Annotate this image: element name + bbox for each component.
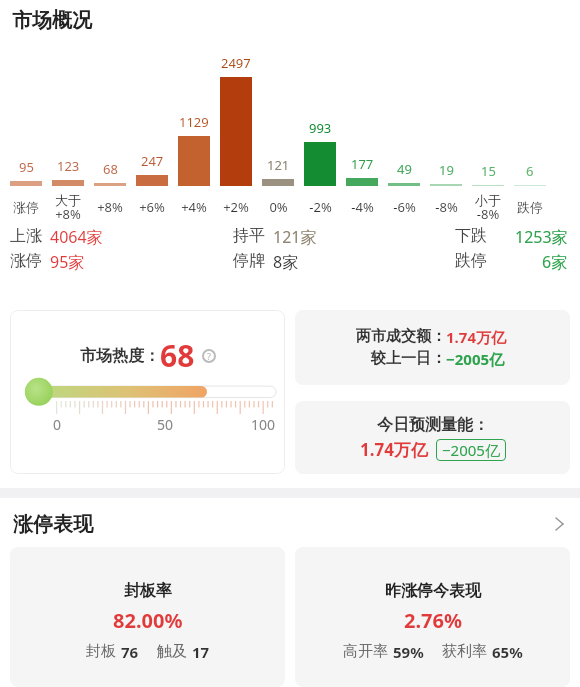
staticText: 涨停 [13,199,39,215]
staticText: 17 [192,642,210,662]
staticText: +2% [223,198,249,216]
staticText: 95 [19,158,34,176]
staticText: 涨停 [10,251,42,271]
staticText: 昨涨停今表现 [385,581,481,601]
button[interactable]: 今日预测量能： [295,401,570,474]
staticText: 2497 [221,54,251,72]
staticText: +4% [181,198,207,216]
staticText: 65% [492,642,523,662]
staticText: 68 [103,160,118,178]
staticText: 下跌 [455,226,487,246]
button[interactable]: 涨停表现 [13,509,566,539]
staticText: 121家 [273,226,317,248]
staticText: 121 [267,156,290,174]
staticText: −2005亿 [446,349,505,369]
staticText: 封板率 [124,581,172,601]
staticText: 上涨 [10,226,42,246]
button[interactable]: 两市成交额： [295,310,570,385]
staticText: 获利率 [442,642,487,661]
staticText: 较上一日： [371,349,446,368]
staticText: 68 [160,335,195,376]
staticText: ? [207,350,211,362]
staticText: 停牌 [233,251,265,271]
staticText: 8家 [273,251,299,273]
staticText: 247 [141,152,164,170]
staticText: 0% [269,198,288,216]
button[interactable]: 封板率 [10,547,285,687]
staticText: -6% [393,198,416,216]
staticText: 今日预测量能： [377,415,489,435]
staticText: 15 [481,162,496,180]
staticText: 993 [309,119,332,137]
staticText: 市场热度： [80,346,160,366]
staticText: 市场概况 [12,8,92,33]
staticText: 1.74万亿 [360,438,428,461]
staticText: 6家 [542,251,568,273]
staticText: +8% [97,198,123,216]
staticText: 跌停 [455,251,487,271]
staticText: 1129 [179,113,209,131]
staticText: 100 [251,415,276,434]
staticText: 持平 [233,226,265,246]
staticText: 跌停 [517,199,543,215]
staticText: 2.76% [404,607,462,634]
button[interactable]: 市场热度： [10,310,285,474]
staticText: 涨停表现 [13,512,93,537]
staticText: 两市成交额： [356,327,446,346]
staticText: 123 [57,157,80,175]
staticText: 小于 -8% [475,192,501,223]
staticText: 19 [439,161,454,179]
staticText: 高开率 [343,642,388,661]
staticText: 1253家 [515,226,568,248]
staticText: 50 [157,415,174,434]
staticText: 95家 [50,251,85,273]
staticText: −2005亿 [442,440,500,460]
staticText: 触及 [157,642,187,661]
staticText: +6% [139,198,165,216]
staticText: 0 [53,415,62,434]
staticText: -8% [435,198,458,216]
staticText: 76 [121,642,139,662]
staticText: 大于 +8% [55,192,81,223]
staticText: 49 [397,160,412,178]
staticText: 177 [351,155,374,173]
button[interactable]: 昨涨停今表现 [295,547,570,687]
staticText: 82.00% [113,607,183,634]
staticText: 1.74万亿 [446,327,506,347]
staticText: -4% [351,198,374,216]
staticText: -2% [309,198,332,216]
staticText: 封板 [86,642,116,661]
staticText: 4064家 [50,226,103,248]
staticText: 6 [526,162,534,180]
staticText: 59% [393,642,424,662]
